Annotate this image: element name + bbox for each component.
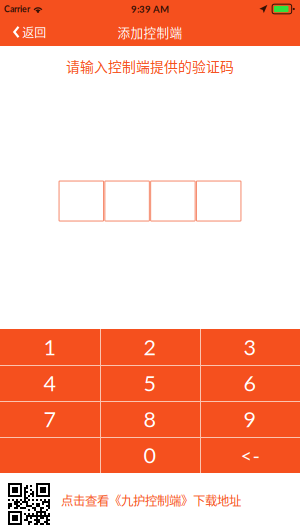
- button[interactable]: 3: [200, 329, 300, 365]
- staticText: 5: [143, 370, 156, 396]
- button[interactable]: 9: [200, 401, 300, 437]
- button[interactable]: <-: [200, 437, 300, 473]
- staticText: 添加控制端: [117, 23, 182, 41]
- button[interactable]: 点击查看《九护控制端》下载地址: [0, 483, 300, 525]
- button[interactable]: [0, 437, 100, 473]
- staticText: 0: [143, 442, 156, 468]
- staticText: 8: [143, 406, 156, 432]
- staticText: 返回: [22, 23, 46, 41]
- staticText: 6: [243, 370, 256, 396]
- button[interactable]: 5: [100, 365, 200, 401]
- staticText: 3: [243, 334, 256, 360]
- button[interactable]: 8: [100, 401, 200, 437]
- staticText: 9: [243, 406, 256, 432]
- button[interactable]: 4: [0, 365, 100, 401]
- staticText: 1: [43, 334, 56, 360]
- button[interactable]: 返回: [0, 18, 52, 46]
- button[interactable]: 7: [0, 401, 100, 437]
- staticText: 7: [43, 406, 56, 432]
- staticText: 请输入控制端提供的验证码: [66, 56, 234, 76]
- staticText: 2: [143, 334, 156, 360]
- button[interactable]: 2: [100, 329, 200, 365]
- staticText: 点击查看《九护控制端》下载地址: [61, 491, 241, 509]
- staticText: Carrier: [4, 4, 30, 14]
- button[interactable]: 1: [0, 329, 100, 365]
- button[interactable]: 6: [200, 365, 300, 401]
- button[interactable]: 0: [100, 437, 200, 473]
- staticText: <-: [240, 443, 259, 467]
- staticText: 4: [43, 370, 56, 396]
- staticText: 9:39 AM: [131, 3, 169, 15]
